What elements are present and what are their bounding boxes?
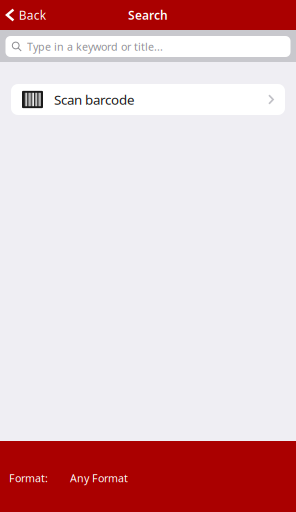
staticText: Back	[19, 7, 46, 23]
button[interactable]: Search field: type in a keyword or title	[0, 35, 296, 57]
button[interactable]: Back	[0, 0, 62, 30]
staticText: Format:	[9, 471, 48, 485]
staticText: Type in a keyword or title...	[27, 39, 163, 54]
staticText: Any Format	[70, 471, 128, 485]
staticText: Scan barcode	[54, 91, 135, 108]
button[interactable]: Scan barcode	[11, 84, 285, 115]
staticText: Search	[128, 7, 168, 23]
button[interactable]: Any Format	[48, 466, 138, 490]
